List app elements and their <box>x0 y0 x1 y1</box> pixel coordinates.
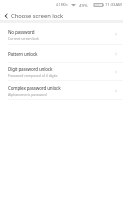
staticText: 49% <box>79 2 88 8</box>
staticText: 4.18K/s <box>56 2 68 7</box>
staticText: Choose screen lock <box>11 12 64 20</box>
staticText: Current screen lock <box>8 36 39 41</box>
button[interactable]: Complex password unlock <box>0 81 123 100</box>
button[interactable]: Digit password unlock <box>0 63 123 81</box>
staticText: 11:33AM <box>105 2 122 8</box>
staticText: Pattern unlock <box>8 51 38 57</box>
button[interactable]: Back <box>0 9 11 20</box>
staticText: Password composed of 4 digits <box>8 73 58 78</box>
button[interactable]: No password <box>0 23 123 45</box>
staticText: Complex password unlock <box>8 85 61 91</box>
staticText: No password <box>8 29 35 35</box>
staticText: Digit password unlock <box>8 66 53 72</box>
staticText: Alphanumeric password <box>8 92 47 97</box>
button[interactable]: Pattern unlock <box>0 45 123 63</box>
